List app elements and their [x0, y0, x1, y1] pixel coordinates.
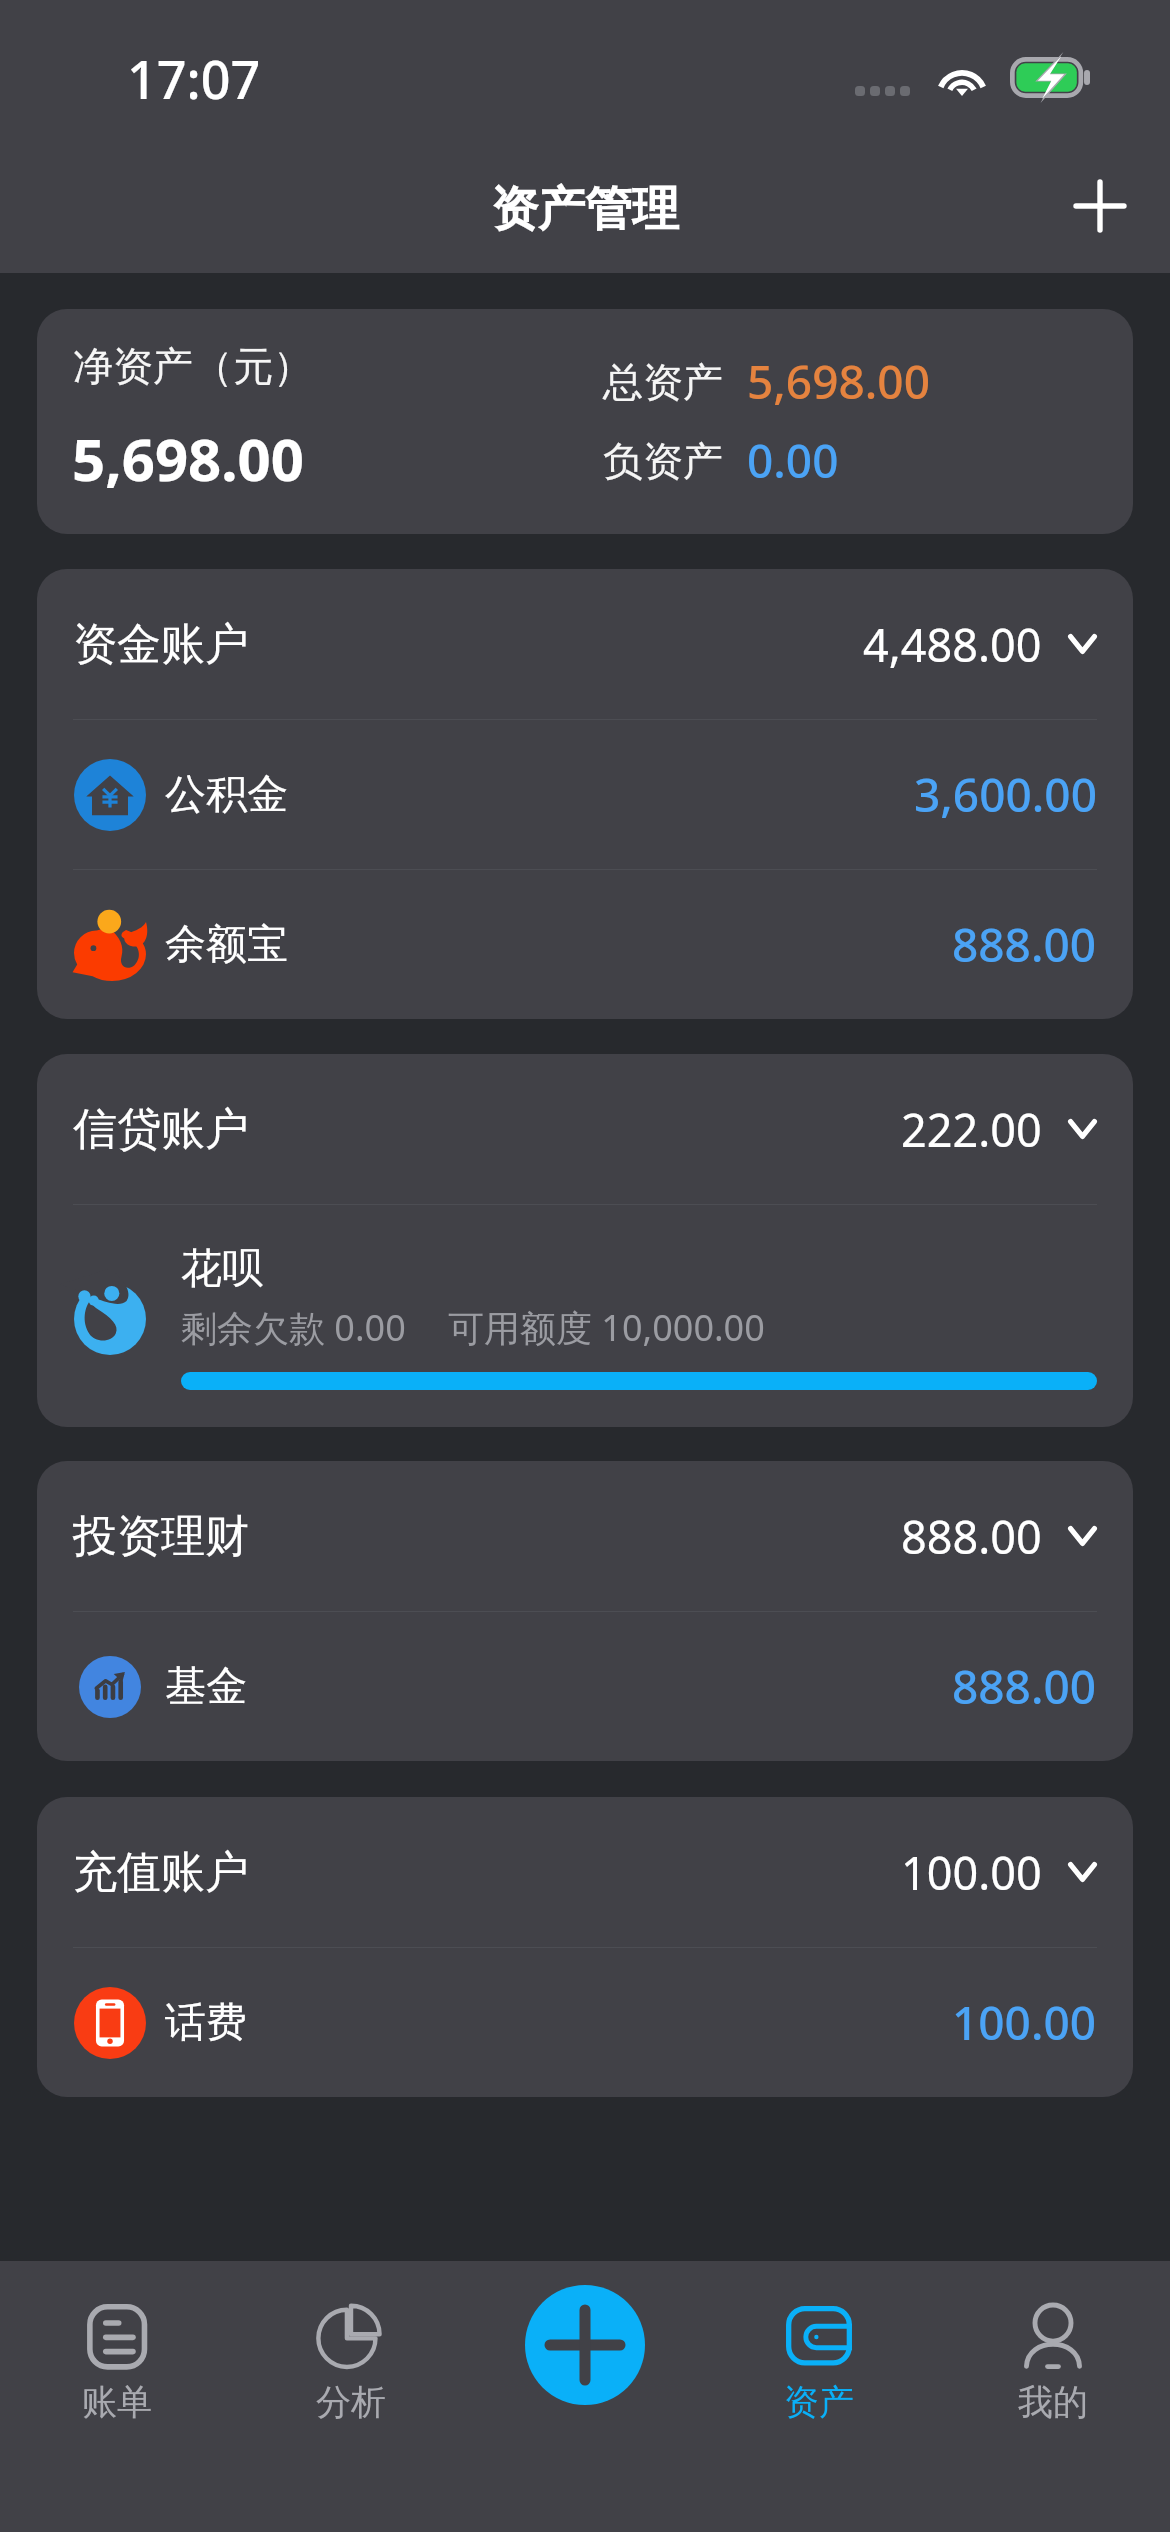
- button[interactable]: 公积金: [37, 720, 1133, 869]
- staticText: 888.00: [952, 913, 1097, 976]
- button[interactable]: 花呗: [37, 1205, 1133, 1427]
- staticText: 话费: [165, 1997, 247, 2049]
- button[interactable]: 净资产（元）: [37, 309, 1133, 534]
- staticText: 资产: [784, 2380, 854, 2424]
- staticText: 0.00: [747, 429, 839, 492]
- staticText: 100.00: [952, 1991, 1097, 2054]
- staticText: 3,600.00: [914, 763, 1097, 826]
- staticText: 负资产: [603, 436, 723, 486]
- button[interactable]: 账单: [0, 2261, 234, 2532]
- staticText: 100.00: [901, 1842, 1042, 1903]
- staticText: 资金账户: [73, 617, 249, 672]
- staticText: 余额宝: [165, 919, 288, 971]
- button[interactable]: 信贷账户: [37, 1054, 1133, 1204]
- button[interactable]: 我的: [936, 2261, 1170, 2532]
- staticText: 花呗: [181, 1243, 263, 1295]
- staticText: 总资产: [603, 357, 723, 407]
- button[interactable]: 资产: [702, 2261, 936, 2532]
- button[interactable]: Add account: [1056, 162, 1144, 250]
- staticText: 888.00: [901, 1506, 1042, 1567]
- staticText: 公积金: [165, 769, 288, 821]
- staticText: 888.00: [952, 1655, 1097, 1718]
- staticText: 222.00: [901, 1099, 1042, 1160]
- staticText: 分析: [316, 2380, 386, 2424]
- staticText: 充值账户: [73, 1845, 249, 1900]
- button[interactable]: 基金: [37, 1612, 1133, 1761]
- staticText: 可用额度 10,000.00: [448, 1303, 765, 1352]
- staticText: 17:07: [127, 43, 261, 114]
- staticText: 我的: [1018, 2380, 1088, 2424]
- button[interactable]: 话费: [37, 1948, 1133, 2097]
- staticText: 账单: [82, 2380, 152, 2424]
- button[interactable]: 分析: [234, 2261, 468, 2532]
- button[interactable]: 资金账户: [37, 569, 1133, 719]
- button[interactable]: 余额宝: [37, 870, 1133, 1019]
- staticText: 剩余欠款 0.00: [181, 1303, 406, 1352]
- button[interactable]: 投资理财: [37, 1461, 1133, 1611]
- staticText: 5,698.00: [747, 350, 930, 413]
- staticText: 5,698.00: [72, 419, 304, 498]
- staticText: 信贷账户: [73, 1102, 249, 1157]
- staticText: 资产管理: [491, 180, 679, 239]
- staticText: 投资理财: [73, 1509, 249, 1564]
- staticText: 4,488.00: [863, 614, 1042, 675]
- button[interactable]: 充值账户: [37, 1797, 1133, 1947]
- staticText: 净资产（元）: [73, 341, 313, 391]
- button[interactable]: Add record: [525, 2285, 645, 2405]
- staticText: 基金: [165, 1661, 247, 1713]
